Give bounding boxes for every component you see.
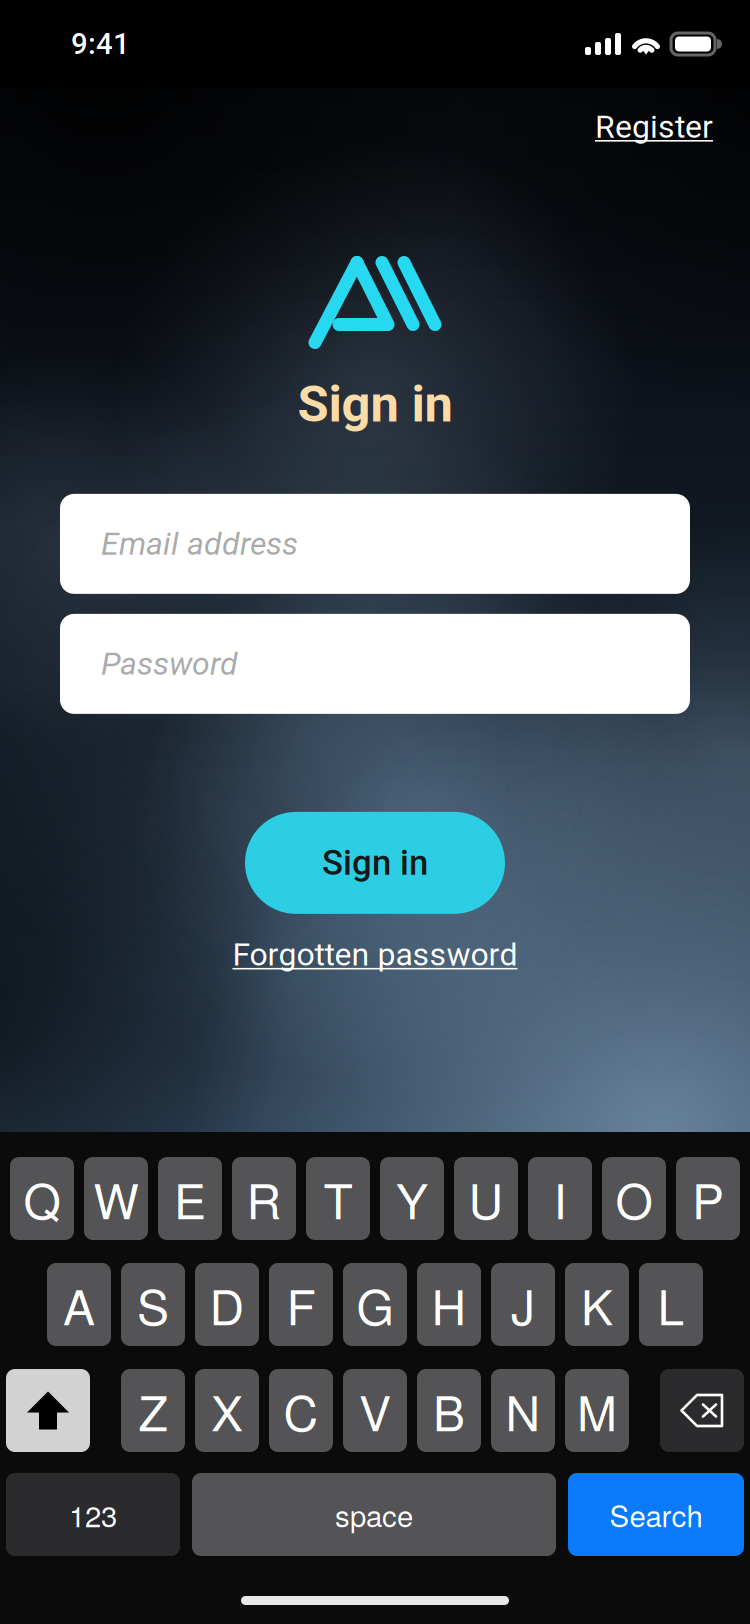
staticText: U <box>468 1164 503 1233</box>
staticText: Password <box>101 645 238 683</box>
staticText: G <box>356 1270 393 1339</box>
staticText: Z <box>138 1376 167 1445</box>
button[interactable]: M <box>565 1369 629 1452</box>
staticText: S <box>137 1270 169 1339</box>
button[interactable]: Y <box>380 1157 444 1240</box>
staticText: M <box>577 1376 617 1445</box>
staticText: E <box>174 1164 206 1233</box>
staticText: 123 <box>69 1493 117 1535</box>
staticText: Sign in <box>297 374 452 434</box>
button[interactable]: N <box>491 1369 555 1452</box>
staticText: B <box>433 1376 465 1445</box>
button[interactable]: Search <box>568 1473 744 1556</box>
staticText: V <box>359 1376 391 1445</box>
staticText: J <box>511 1270 535 1339</box>
button[interactable]: G <box>343 1263 407 1346</box>
button[interactable]: Password <box>60 614 690 714</box>
button[interactable]: B <box>417 1369 481 1452</box>
button[interactable]: R <box>232 1157 296 1240</box>
button[interactable]: space <box>192 1473 556 1556</box>
button[interactable]: Z <box>121 1369 185 1452</box>
button[interactable]: K <box>565 1263 629 1346</box>
staticText: Email address <box>101 525 298 563</box>
button[interactable]: T <box>306 1157 370 1240</box>
staticText: K <box>581 1270 613 1339</box>
staticText: D <box>209 1270 244 1339</box>
staticText: F <box>286 1270 315 1339</box>
button[interactable]: V <box>343 1369 407 1452</box>
staticText: R <box>246 1164 281 1233</box>
staticText: Register <box>595 108 713 145</box>
button[interactable]: O <box>602 1157 666 1240</box>
button[interactable]: F <box>269 1263 333 1346</box>
staticText: I <box>553 1164 566 1233</box>
button[interactable]: J <box>491 1263 555 1346</box>
button[interactable]: I <box>528 1157 592 1240</box>
button[interactable]: L <box>639 1263 703 1346</box>
button[interactable]: C <box>269 1369 333 1452</box>
button[interactable]: D <box>195 1263 259 1346</box>
staticText: L <box>657 1270 684 1339</box>
staticText: H <box>431 1270 466 1339</box>
staticText: 9:41 <box>71 27 130 61</box>
staticText: P <box>692 1164 724 1233</box>
staticText: Search <box>609 1493 702 1535</box>
button[interactable]: Shift <box>6 1369 90 1452</box>
button[interactable]: X <box>195 1369 259 1452</box>
staticText: O <box>615 1164 652 1233</box>
staticText: Sign in <box>322 843 428 883</box>
button[interactable]: U <box>454 1157 518 1240</box>
button[interactable]: 123 <box>6 1473 180 1556</box>
button[interactable]: Register <box>595 108 713 145</box>
button[interactable]: A <box>47 1263 111 1346</box>
staticText: Q <box>23 1164 60 1233</box>
staticText: N <box>505 1376 540 1445</box>
staticText: Forgotten password <box>232 936 517 973</box>
button[interactable]: Forgotten password <box>232 936 517 973</box>
button[interactable]: Delete <box>660 1369 744 1452</box>
button[interactable]: P <box>676 1157 740 1240</box>
button[interactable]: W <box>84 1157 148 1240</box>
staticText: Y <box>396 1164 428 1233</box>
button[interactable]: H <box>417 1263 481 1346</box>
button[interactable]: Sign in <box>245 812 505 914</box>
staticText: T <box>323 1164 352 1233</box>
staticText: X <box>211 1376 243 1445</box>
button[interactable]: E <box>158 1157 222 1240</box>
button[interactable]: Email address <box>60 494 690 594</box>
button[interactable]: Q <box>10 1157 74 1240</box>
staticText: C <box>283 1376 318 1445</box>
staticText: A <box>63 1270 95 1339</box>
staticText: W <box>93 1164 138 1233</box>
button[interactable]: S <box>121 1263 185 1346</box>
staticText: space <box>335 1493 413 1535</box>
